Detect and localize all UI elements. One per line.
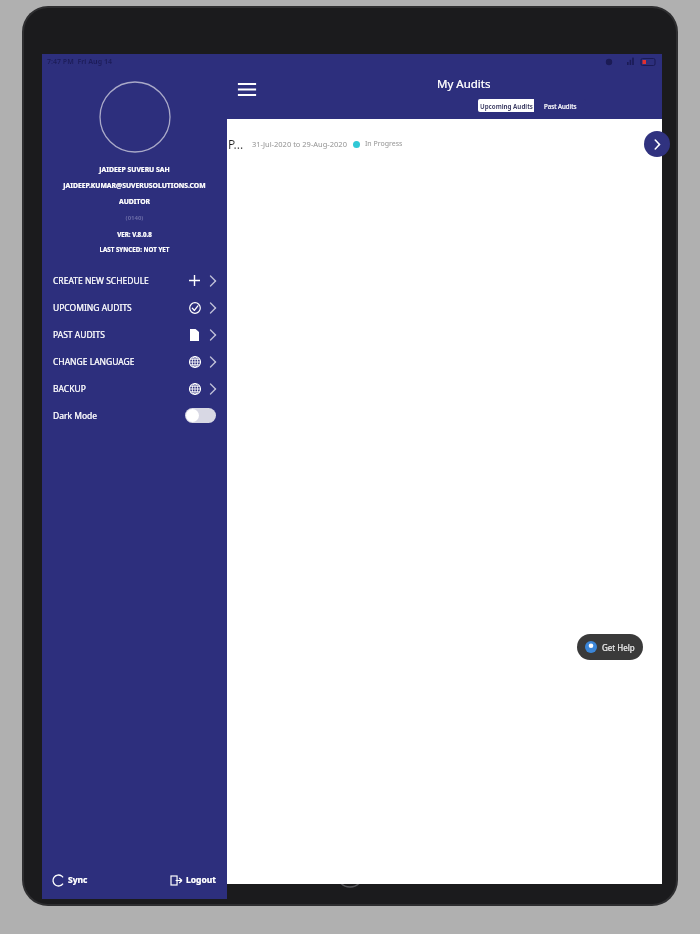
staticText: My Audits — [437, 76, 491, 92]
staticText: JAIDEEP.KUMAR@SUVERUSOLUTIONS.COM — [42, 181, 227, 190]
button[interactable]: Logout — [171, 874, 216, 886]
button[interactable]: Open audit — [644, 131, 670, 157]
staticText: 7:47 PM Fri Aug 14 — [47, 57, 112, 67]
staticText: Hithesh GP P... — [162, 136, 244, 152]
staticText: (0140) — [42, 214, 227, 222]
staticText: BACKUP — [53, 383, 86, 395]
button[interactable]: Open navigation menu — [234, 76, 260, 102]
staticText: Sync — [68, 874, 88, 886]
button[interactable]: Get Help — [577, 634, 643, 660]
button[interactable]: Sync — [53, 874, 88, 886]
button[interactable]: CHANGE LANGUAGE — [42, 348, 227, 375]
button[interactable]: PAST AUDITS — [42, 321, 227, 348]
button[interactable]: Dark Mode — [42, 402, 227, 429]
staticText: AUDITOR — [42, 197, 227, 206]
staticText: Upcoming Audits — [480, 102, 533, 110]
staticText: 31-Jul-2020 to 29-Aug-2020 — [252, 139, 347, 149]
button[interactable]: Profile photo — [99, 81, 171, 153]
button[interactable]: BACKUP — [42, 375, 227, 402]
staticText: CHANGE LANGUAGE — [53, 356, 135, 368]
staticText: CREATE NEW SCHEDULE — [53, 275, 149, 287]
staticText: PAST AUDITS — [53, 329, 105, 341]
staticText: JAIDEEP SUVERU SAH — [42, 165, 227, 174]
staticText: VER: V.8.0.8 — [42, 230, 227, 238]
button[interactable]: CREATE NEW SCHEDULE — [42, 267, 227, 294]
staticText: Dark Mode — [53, 410, 98, 422]
staticText: Past Audits — [544, 102, 577, 110]
staticText: UPCOMING AUDITS — [53, 302, 132, 314]
button[interactable]: Hithesh GP P... — [152, 119, 662, 169]
button[interactable]: UPCOMING AUDITS — [42, 294, 227, 321]
staticText: Logout — [186, 874, 216, 886]
button[interactable]: Past Audits — [534, 99, 586, 112]
button[interactable]: Home — [336, 860, 364, 888]
button[interactable]: Upcoming Audits — [478, 99, 534, 112]
staticText: LAST SYNCED: NOT YET — [42, 245, 227, 253]
staticText: Get Help — [602, 642, 635, 653]
staticText: In Progress — [365, 139, 403, 149]
